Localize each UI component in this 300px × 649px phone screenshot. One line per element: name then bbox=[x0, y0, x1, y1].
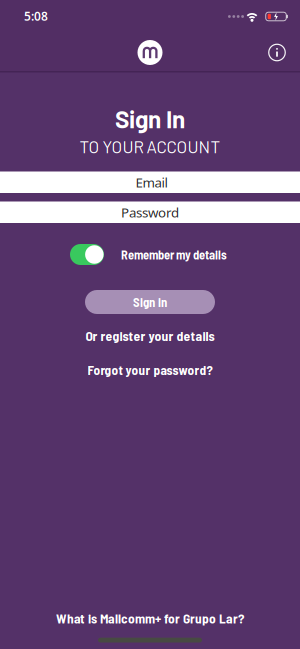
button[interactable]: Remember my details bbox=[0, 244, 300, 265]
button[interactable]: Password bbox=[0, 201, 300, 223]
button[interactable]: Forgot your password? bbox=[87, 362, 212, 378]
staticText: Email bbox=[135, 173, 167, 191]
staticText: What is Mallcomm+ for Grupo Lar? bbox=[56, 610, 244, 626]
button[interactable]: Sign in bbox=[85, 290, 215, 314]
staticText: Sign in bbox=[133, 294, 167, 310]
staticText: Or register your details bbox=[85, 327, 214, 344]
staticText: Forgot your password? bbox=[87, 362, 212, 378]
button[interactable]: Email bbox=[0, 171, 300, 193]
staticText: TO YOUR ACCOUNT bbox=[79, 136, 220, 157]
button[interactable] bbox=[266, 41, 288, 63]
staticText: Sign In bbox=[115, 104, 185, 133]
button[interactable]: What is Mallcomm+ for Grupo Lar? bbox=[56, 610, 244, 626]
button[interactable]: Or register your details bbox=[85, 327, 214, 344]
staticText: 5:08 bbox=[24, 8, 48, 24]
staticText: Password bbox=[121, 203, 179, 221]
staticText: Remember my details bbox=[121, 247, 227, 262]
